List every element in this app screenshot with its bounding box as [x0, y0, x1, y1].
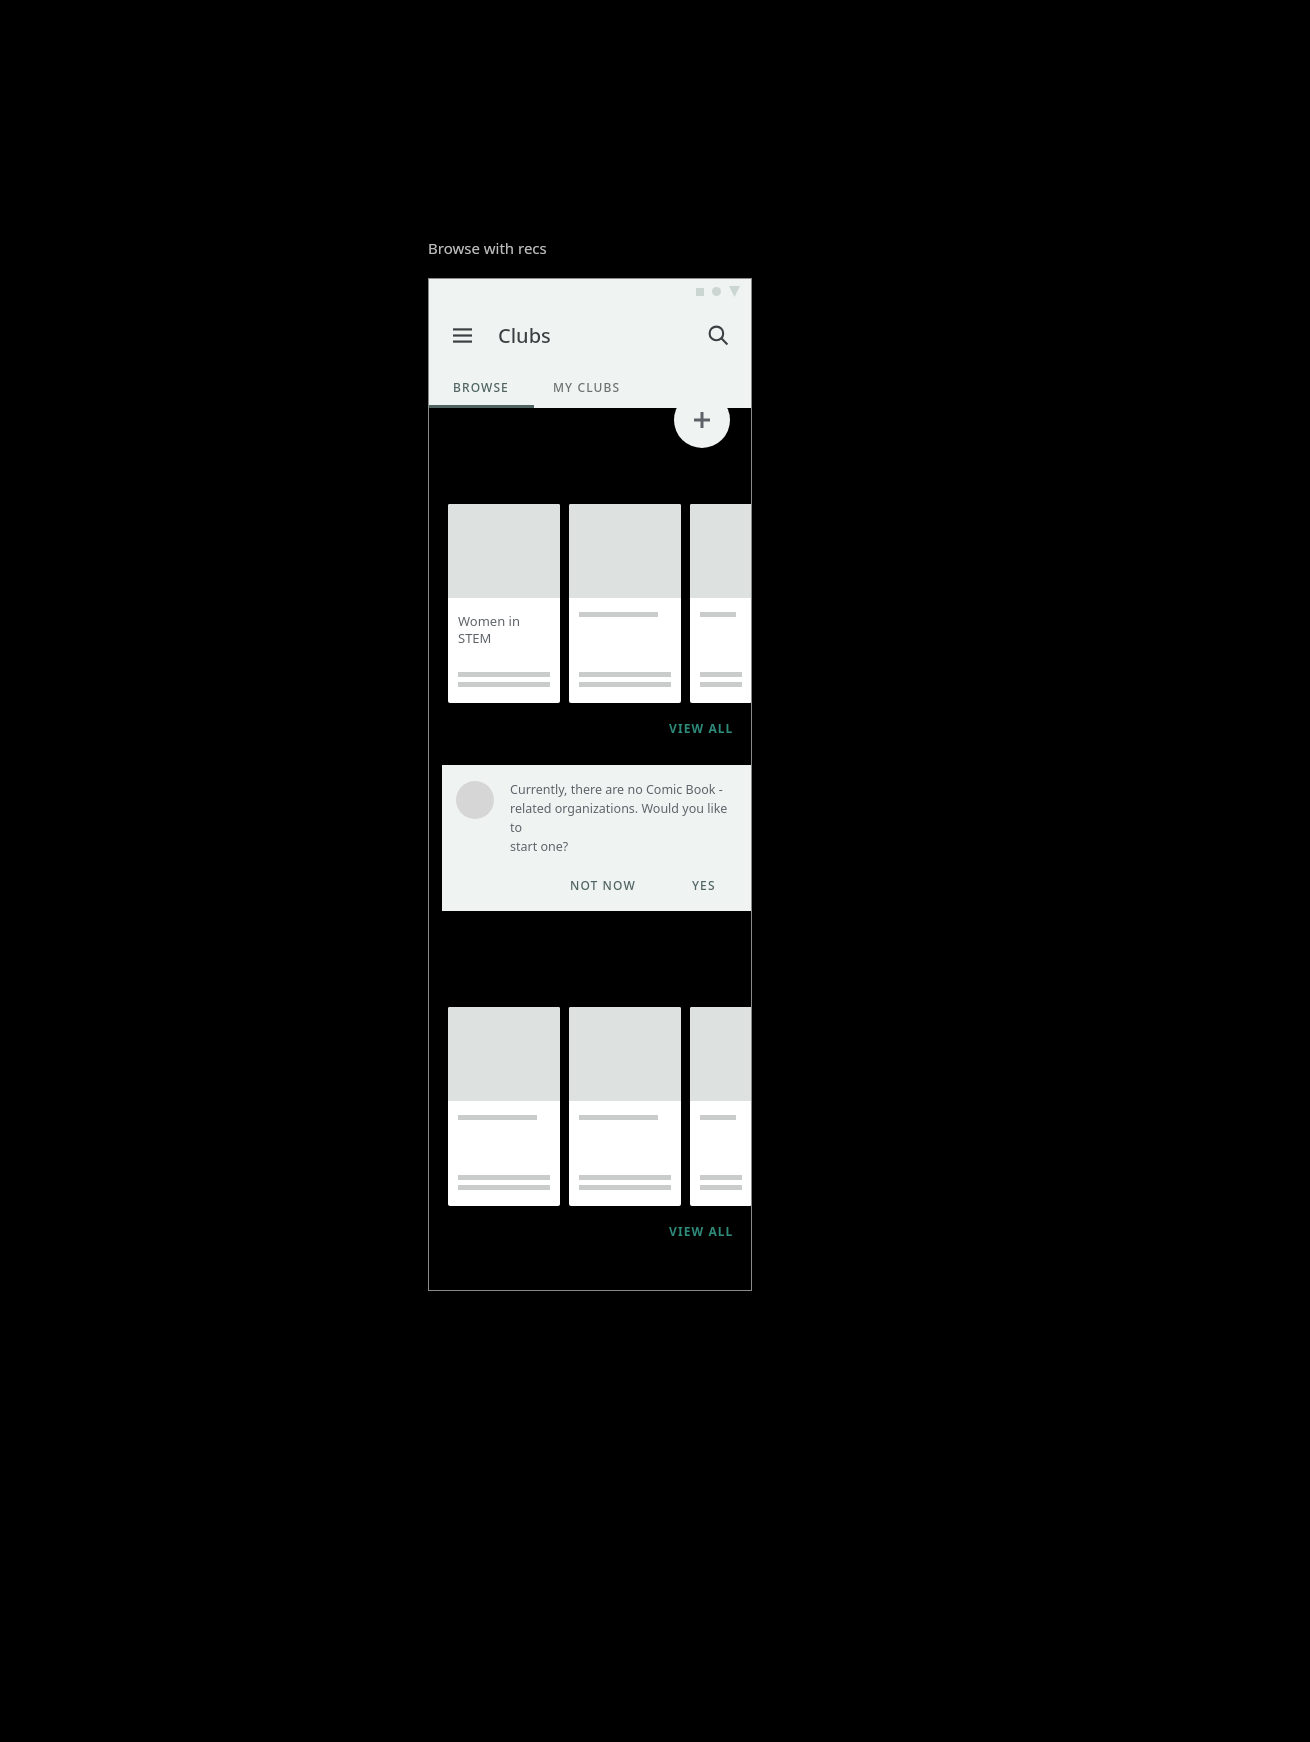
- button[interactable]: [569, 504, 681, 703]
- staticText: Women in STEM: [458, 612, 520, 647]
- button[interactable]: Create club: [674, 392, 730, 448]
- staticText: Clubs: [498, 322, 551, 349]
- staticText: YES: [692, 877, 716, 893]
- staticText: Browse with recs: [428, 238, 547, 258]
- button[interactable]: VIEW ALL: [669, 1223, 734, 1239]
- staticText: BROWSE: [453, 379, 509, 395]
- button[interactable]: MY CLUBS: [534, 366, 640, 408]
- button[interactable]: BROWSE: [428, 366, 534, 408]
- button[interactable]: Women in STEM: [448, 504, 560, 703]
- staticText: NOT NOW: [570, 877, 636, 893]
- staticText: VIEW ALL: [669, 1223, 734, 1239]
- button[interactable]: [690, 504, 752, 703]
- button[interactable]: YES: [682, 871, 726, 899]
- button[interactable]: [690, 1007, 752, 1206]
- staticText: Currently, there are no Comic Book - rel…: [510, 781, 736, 855]
- button[interactable]: [448, 1007, 560, 1206]
- button[interactable]: VIEW ALL: [669, 720, 734, 736]
- button[interactable]: Open navigation menu: [444, 317, 480, 353]
- button[interactable]: Search: [700, 317, 736, 353]
- button[interactable]: [569, 1007, 681, 1206]
- button[interactable]: NOT NOW: [560, 871, 646, 899]
- staticText: VIEW ALL: [669, 720, 734, 736]
- staticText: MY CLUBS: [553, 379, 621, 395]
